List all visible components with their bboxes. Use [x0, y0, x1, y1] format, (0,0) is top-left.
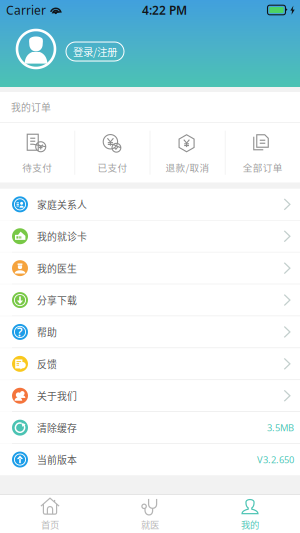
button[interactable]: 已支付 — [75, 131, 150, 174]
button[interactable]: 退款/取消 — [150, 131, 225, 174]
staticText: 我的就诊卡 — [37, 229, 87, 243]
staticText: 已支付 — [97, 160, 127, 174]
button[interactable]: 就医 — [100, 497, 200, 531]
button[interactable]: 家庭关系人 — [0, 189, 300, 220]
button[interactable]: 分享下载 — [0, 284, 300, 316]
staticText: 3.5MB — [267, 421, 294, 434]
button[interactable]: ? — [0, 316, 300, 348]
button[interactable]: 登录/注册 — [66, 42, 124, 61]
button[interactable]: 我的 — [200, 497, 300, 531]
staticText: V3.2.650 — [257, 453, 294, 466]
button[interactable]: 我的医生 — [0, 252, 300, 284]
staticText: 我的订单 — [11, 100, 51, 114]
button[interactable]: 首页 — [0, 497, 100, 531]
staticText: 反馈 — [37, 357, 57, 371]
button[interactable]: 全部订单 — [225, 131, 300, 174]
button[interactable]: 当前版本 — [0, 444, 300, 475]
staticText: 我的医生 — [37, 261, 77, 275]
staticText: 清除缓存 — [37, 420, 77, 435]
staticText: 家庭关系人 — [37, 197, 87, 211]
button[interactable]: 我的就诊卡 — [0, 221, 300, 252]
staticText: 全部订单 — [243, 160, 283, 174]
staticText: 我的 — [241, 518, 259, 531]
staticText: 首页 — [41, 518, 59, 531]
staticText: 登录/注册 — [73, 44, 117, 59]
button[interactable]: 关于我们 — [0, 380, 300, 411]
staticText: ? — [17, 324, 23, 340]
staticText: 待支付 — [22, 160, 52, 174]
staticText: 帮助 — [37, 325, 57, 339]
staticText: 当前版本 — [37, 452, 77, 467]
staticText: Carrier — [6, 2, 46, 18]
button[interactable]: 反馈 — [0, 348, 300, 379]
staticText: 就医 — [141, 518, 159, 531]
staticText: 4:22 PM — [142, 2, 187, 18]
staticText: 分享下载 — [37, 293, 77, 307]
staticText: 关于我们 — [37, 389, 77, 403]
button[interactable]: 清除缓存 — [0, 412, 300, 443]
staticText: 退款/取消 — [166, 160, 210, 174]
button[interactable]: 待支付 — [0, 131, 74, 174]
